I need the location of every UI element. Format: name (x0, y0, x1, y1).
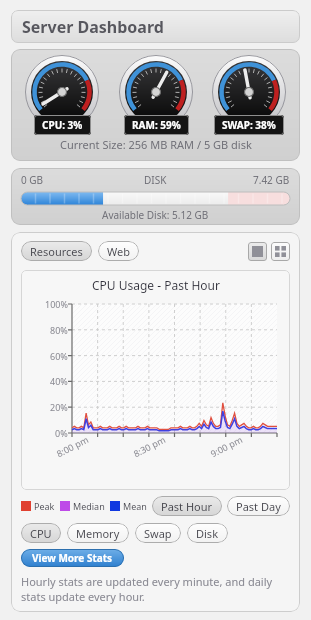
staticText: Hourly stats are updated every minute, a… (21, 574, 290, 604)
staticText: Peak (34, 500, 55, 512)
staticText: DISK (144, 173, 167, 187)
staticText: Swap (144, 526, 172, 541)
staticText: 0 GB (21, 173, 44, 187)
button[interactable]: Server Dashboard (11, 10, 300, 43)
button[interactable]: Memory (67, 523, 129, 543)
staticText: 100% (45, 298, 68, 310)
button[interactable]: List view (248, 242, 267, 261)
staticText: 8:00 pm (54, 433, 91, 459)
button[interactable]: Disk (187, 523, 228, 543)
staticText: Available Disk: 5.12 GB (102, 208, 209, 222)
staticText: Web (107, 244, 130, 259)
staticText: Mean (123, 500, 147, 512)
button[interactable]: View More Stats (21, 549, 124, 567)
button[interactable]: Swap (135, 523, 181, 543)
staticText: 8:30 pm (131, 433, 168, 459)
staticText: 9:00 pm (208, 433, 245, 459)
button[interactable]: Grid view (271, 242, 290, 261)
staticText: Past Day (236, 499, 281, 514)
staticText: CPU Usage - Past Hour (92, 277, 220, 293)
button[interactable]: CPU (21, 523, 61, 543)
staticText: 40% (50, 375, 68, 387)
staticText: 80% (50, 324, 68, 336)
button[interactable]: Web (98, 241, 139, 261)
button[interactable]: SWAP: 38% (214, 115, 284, 135)
staticText: Past Hour (161, 499, 213, 514)
button[interactable]: Resources (21, 241, 92, 261)
staticText: Current Size: 256 MB RAM / 5 GB disk (60, 137, 252, 152)
staticText: CPU: 3% (42, 118, 83, 132)
button[interactable]: Past Day (227, 496, 290, 516)
staticText: 20% (50, 401, 68, 413)
staticText: Server Dashboard (22, 16, 164, 38)
button[interactable]: CPU: 3% (34, 115, 91, 135)
staticText: Resources (30, 244, 83, 259)
staticText: RAM: 59% (132, 118, 181, 132)
staticText: View More Stats (32, 551, 113, 565)
staticText: SWAP: 38% (222, 118, 276, 132)
staticText: 7.42 GB (253, 173, 290, 187)
staticText: 0% (55, 427, 68, 439)
staticText: Disk (196, 526, 219, 541)
button[interactable]: RAM: 59% (124, 115, 189, 135)
button[interactable]: Past Hour (152, 496, 222, 516)
staticText: Memory (76, 526, 120, 541)
staticText: Median (73, 500, 105, 512)
staticText: CPU (30, 526, 52, 541)
staticText: 60% (50, 350, 68, 362)
